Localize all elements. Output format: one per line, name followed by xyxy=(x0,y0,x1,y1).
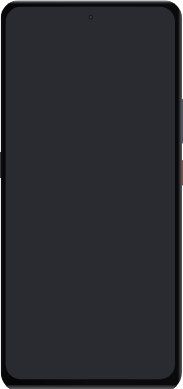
button[interactable]: Volume xyxy=(178,99,183,144)
button[interactable]: Power xyxy=(178,160,183,186)
